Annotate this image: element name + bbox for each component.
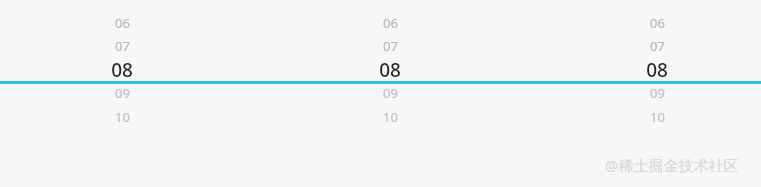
- button[interactable]: 06: [355, 0, 425, 187]
- staticText: @稀土掘金技术社区: [605, 155, 739, 175]
- button[interactable]: 07: [622, 36, 692, 56]
- button[interactable]: 10: [355, 107, 425, 127]
- button[interactable]: 06: [622, 0, 692, 187]
- staticText: 09: [383, 84, 398, 102]
- staticText: 07: [383, 37, 398, 55]
- button[interactable]: 08: [87, 57, 157, 81]
- staticText: 10: [383, 108, 398, 126]
- staticText: 10: [650, 108, 665, 126]
- button[interactable]: 10: [622, 107, 692, 127]
- staticText: 10: [115, 108, 130, 126]
- staticText: 06: [383, 14, 398, 32]
- staticText: 06: [650, 14, 665, 32]
- button[interactable]: 06: [355, 13, 425, 33]
- button[interactable]: 06: [622, 13, 692, 33]
- button[interactable]: 08: [622, 57, 692, 81]
- button[interactable]: 09: [622, 83, 692, 103]
- staticText: 08: [111, 57, 133, 81]
- button[interactable]: 10: [87, 107, 157, 127]
- staticText: 07: [650, 37, 665, 55]
- staticText: 06: [115, 14, 130, 32]
- staticText: 08: [379, 57, 401, 81]
- staticText: 09: [115, 84, 130, 102]
- button[interactable]: 08: [355, 57, 425, 81]
- button[interactable]: 09: [87, 83, 157, 103]
- button[interactable]: 07: [87, 36, 157, 56]
- staticText: 07: [115, 37, 130, 55]
- button[interactable]: 06: [87, 13, 157, 33]
- staticText: 09: [650, 84, 665, 102]
- button[interactable]: 09: [355, 83, 425, 103]
- button[interactable]: 06: [87, 0, 157, 187]
- staticText: 08: [646, 57, 668, 81]
- button[interactable]: 07: [355, 36, 425, 56]
